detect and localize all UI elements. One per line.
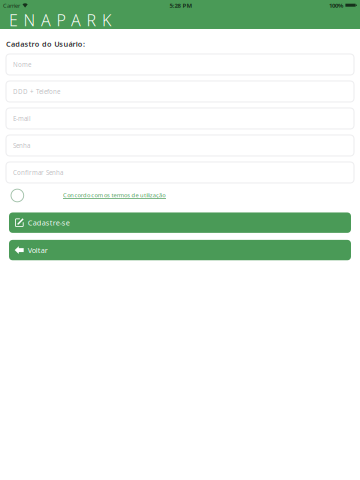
staticText: Confirmar Senha: [13, 168, 63, 177]
staticText: Cadastre-se: [28, 218, 70, 228]
staticText: 5:28 PM: [169, 1, 192, 10]
staticText: Carrier: [3, 2, 20, 9]
staticText: DDD + Telefone: [13, 87, 60, 96]
staticText: ENAPARK: [9, 9, 111, 31]
staticText: Concordo com os termos de utilização: [63, 191, 165, 199]
button[interactable]: Voltar: [9, 240, 351, 260]
staticText: 100%: [329, 1, 343, 10]
staticText: Voltar: [28, 245, 48, 255]
staticText: E-mail: [13, 114, 31, 123]
staticText: Senha: [13, 141, 30, 150]
staticText: Nome: [13, 60, 31, 69]
button[interactable]: Concordo com os termos de utilização: [63, 192, 166, 199]
staticText: Cadastro do Usuário:: [6, 39, 85, 49]
button[interactable]: Aceitar os termos de utilização: [11, 189, 24, 202]
button[interactable]: Cadastre-se: [9, 212, 351, 233]
